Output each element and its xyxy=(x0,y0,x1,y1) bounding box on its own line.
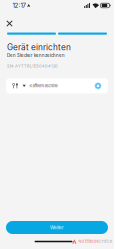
staticText: 12:17 xyxy=(12,2,25,9)
button[interactable]: Close xyxy=(2,17,16,30)
staticText: Den Stecker kennzeichnen xyxy=(7,53,65,58)
button[interactable]: Kaffeemaschine xyxy=(6,78,108,93)
staticText: CHECK xyxy=(99,239,112,244)
staticText: Weiter xyxy=(50,225,64,230)
staticText: SN: AYTTBL1E30404120 xyxy=(7,63,58,68)
staticText: NOTEBOOK xyxy=(78,239,98,244)
staticText: Gerät einrichten xyxy=(7,42,71,52)
staticText: Kaffeemaschine xyxy=(29,83,57,88)
button[interactable]: Weiter xyxy=(6,221,108,234)
